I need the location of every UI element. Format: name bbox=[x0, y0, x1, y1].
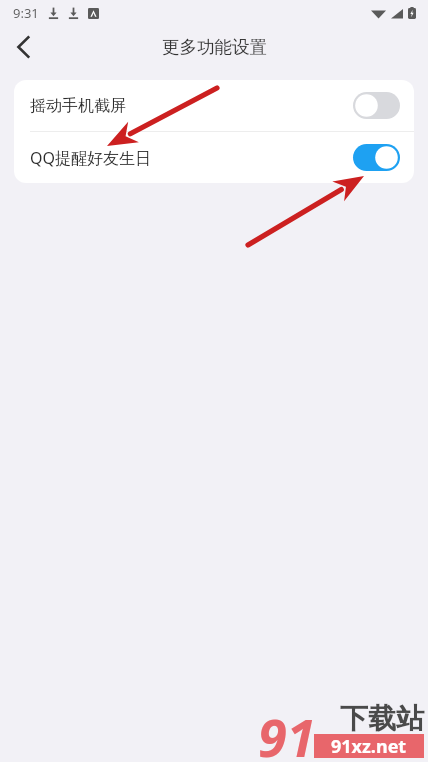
button[interactable]: 摇动手机截屏 bbox=[14, 80, 414, 131]
staticText: 91 bbox=[258, 701, 316, 761]
button[interactable]: Off bbox=[353, 92, 400, 119]
staticText: 更多功能设置 bbox=[162, 36, 267, 58]
staticText: 下载站 bbox=[340, 701, 424, 736]
button[interactable]: QQ提醒好友生日 bbox=[14, 132, 414, 183]
button[interactable]: On bbox=[353, 144, 400, 171]
button[interactable]: Back bbox=[0, 26, 46, 68]
staticText: 9:31 bbox=[13, 4, 39, 22]
staticText: 摇动手机截屏 bbox=[30, 96, 126, 116]
staticText: QQ提醒好友生日 bbox=[30, 147, 151, 169]
staticText: 91xz.net bbox=[331, 734, 407, 758]
